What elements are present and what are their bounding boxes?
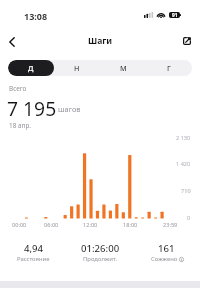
staticText: 13:08 — [24, 10, 48, 22]
staticText: 18:00 — [123, 221, 138, 229]
button[interactable]: М — [100, 60, 146, 76]
button[interactable]: 4,94 — [0, 240, 67, 268]
staticText: М — [120, 63, 127, 73]
staticText: 4,94 — [24, 242, 44, 254]
button[interactable]: Д — [8, 60, 54, 76]
staticText: 7 195 — [7, 95, 57, 121]
staticText: Продолжит. — [83, 255, 118, 263]
staticText: 1 420 — [176, 160, 191, 168]
button[interactable]: Back — [1, 31, 22, 52]
staticText: 12:00 — [83, 221, 98, 229]
staticText: Сожжено — [151, 255, 178, 263]
staticText: 06:00 — [44, 221, 59, 229]
staticText: Д — [28, 63, 34, 73]
staticText: Г — [167, 63, 171, 73]
staticText: 00:00 — [12, 221, 27, 229]
staticText: Всего — [9, 84, 27, 93]
button[interactable]: Н — [54, 60, 100, 76]
button[interactable]: Share — [176, 30, 197, 51]
staticText: 01:26:00 — [81, 242, 120, 254]
button[interactable]: 161 — [133, 240, 200, 268]
staticText: Шаги — [88, 35, 113, 47]
button[interactable]: Г — [146, 60, 192, 76]
staticText: 161 — [158, 242, 175, 254]
button[interactable]: 01:26:00 — [67, 240, 134, 268]
staticText: 0 — [187, 214, 191, 222]
staticText: 91 — [172, 12, 178, 18]
staticText: 2 130 — [176, 134, 191, 142]
staticText: Расстояние — [17, 255, 50, 263]
staticText: 18 апр. — [9, 121, 31, 130]
staticText: Н — [74, 63, 80, 73]
staticText: 710 — [181, 187, 191, 195]
staticText: шагов — [58, 104, 81, 114]
staticText: 23:59 — [163, 221, 178, 229]
